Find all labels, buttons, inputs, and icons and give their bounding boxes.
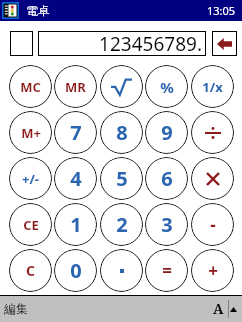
button[interactable]: Multiply xyxy=(191,157,234,200)
staticText: 1/x xyxy=(202,78,223,96)
staticText: 0 xyxy=(70,257,82,284)
staticText: 9 xyxy=(161,119,173,146)
button[interactable]: 編集 xyxy=(4,301,28,316)
staticText: M+ xyxy=(21,124,41,142)
staticText: A xyxy=(213,299,224,318)
button[interactable]: Input method xyxy=(211,299,226,318)
button[interactable]: % xyxy=(145,65,188,108)
button[interactable]: MC xyxy=(9,65,52,108)
button[interactable]: Divide xyxy=(191,111,234,154)
button[interactable]: M+ xyxy=(9,111,52,154)
staticText: MC xyxy=(20,78,41,96)
button[interactable]: 3 xyxy=(145,203,188,246)
staticText: CE xyxy=(23,216,39,234)
staticText: 123456789. xyxy=(99,31,202,56)
button[interactable]: 9 xyxy=(145,111,188,154)
staticText: +/- xyxy=(22,170,39,188)
staticText: 8 xyxy=(116,119,128,146)
staticText: + xyxy=(208,259,218,282)
button[interactable]: Square root xyxy=(100,65,143,108)
button[interactable]: 4 xyxy=(54,157,97,200)
button[interactable]: + xyxy=(191,249,234,292)
button[interactable]: Backspace xyxy=(212,31,237,56)
staticText: % xyxy=(160,77,174,97)
button[interactable]: 5 xyxy=(100,157,143,200)
button[interactable]: 8 xyxy=(100,111,143,154)
staticText: 6 xyxy=(161,165,173,192)
button[interactable]: 2 xyxy=(100,203,143,246)
staticText: MR xyxy=(65,78,86,96)
staticText: 3 xyxy=(161,211,173,238)
button[interactable]: C xyxy=(9,249,52,292)
button[interactable]: Start xyxy=(2,2,19,19)
button[interactable]: 0 xyxy=(54,249,97,292)
button[interactable]: +/- xyxy=(9,157,52,200)
staticText: 4 xyxy=(70,165,82,192)
button[interactable]: 7 xyxy=(54,111,97,154)
button[interactable]: Memory indicator xyxy=(10,31,33,56)
button[interactable]: Decimal point xyxy=(100,249,143,292)
button[interactable]: MR xyxy=(54,65,97,108)
staticText: 電卓 xyxy=(26,3,50,18)
button[interactable]: 6 xyxy=(145,157,188,200)
button[interactable]: CE xyxy=(9,203,52,246)
button[interactable]: 1/x xyxy=(191,65,234,108)
button[interactable]: 123456789. xyxy=(38,31,206,56)
staticText: 5 xyxy=(116,165,128,192)
button[interactable]: 13:05 xyxy=(207,3,236,18)
staticText: 2 xyxy=(116,211,128,238)
staticText: C xyxy=(26,261,35,280)
staticText: - xyxy=(210,213,216,236)
staticText: 1 xyxy=(70,211,82,238)
button[interactable]: 1 xyxy=(54,203,97,246)
button[interactable]: - xyxy=(191,203,234,246)
staticText: 7 xyxy=(70,119,82,146)
button[interactable]: Select input method xyxy=(228,301,239,317)
button[interactable]: = xyxy=(145,249,188,292)
staticText: = xyxy=(162,259,172,282)
